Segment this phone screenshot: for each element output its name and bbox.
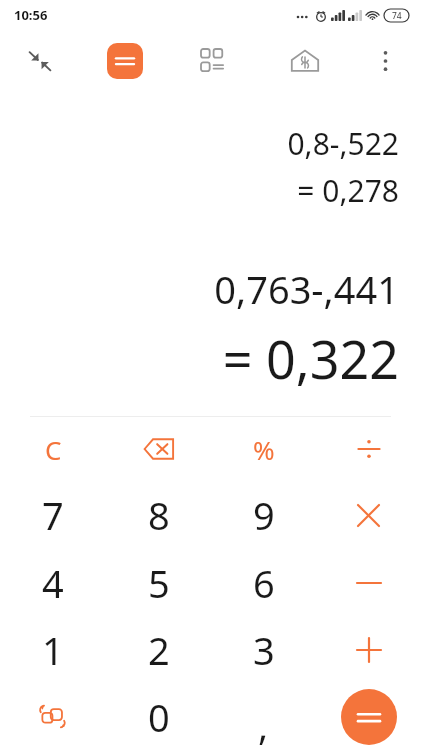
button[interactable]: Collapse bbox=[0, 30, 80, 92]
staticText: 3 bbox=[253, 624, 275, 676]
button[interactable]: 1 bbox=[0, 616, 106, 683]
staticText: 8 bbox=[148, 489, 170, 541]
button[interactable]: More options bbox=[350, 30, 421, 92]
staticText: 74 bbox=[392, 10, 402, 22]
staticText: 6 bbox=[253, 557, 275, 609]
staticText: , bbox=[258, 699, 269, 750]
button[interactable]: Plus bbox=[316, 616, 421, 683]
button[interactable]: Calculator bbox=[80, 30, 170, 92]
button[interactable]: 5 bbox=[106, 549, 211, 616]
button[interactable]: Units bbox=[170, 30, 260, 92]
staticText: 10:56 bbox=[14, 6, 48, 24]
button[interactable]: Equals bbox=[341, 689, 397, 745]
staticText: = 0,278 bbox=[297, 170, 399, 211]
button[interactable]: 6 bbox=[211, 549, 316, 616]
button[interactable]: 4 bbox=[0, 549, 106, 616]
staticText: 7 bbox=[42, 489, 64, 541]
button[interactable]: 0 bbox=[106, 683, 211, 750]
staticText: 2 bbox=[148, 624, 170, 676]
button[interactable]: Clear bbox=[0, 417, 106, 481]
staticText: 4 bbox=[42, 557, 64, 609]
button[interactable]: 9 bbox=[211, 481, 316, 549]
staticText: 5 bbox=[148, 557, 170, 609]
button[interactable]: , bbox=[211, 683, 316, 750]
staticText: C bbox=[45, 432, 62, 467]
button[interactable]: Convert bbox=[0, 683, 106, 750]
button[interactable]: 2 bbox=[106, 616, 211, 683]
staticText: 0,8-,522 bbox=[287, 123, 399, 164]
staticText: 1 bbox=[42, 624, 64, 676]
button[interactable]: 8 bbox=[106, 481, 211, 549]
staticText: % bbox=[253, 432, 275, 467]
button[interactable]: 7 bbox=[0, 481, 106, 549]
button[interactable]: 3 bbox=[211, 616, 316, 683]
staticText: 9 bbox=[253, 489, 275, 541]
staticText: = 0,322 bbox=[222, 323, 399, 394]
staticText: 0,763-,441 bbox=[214, 263, 399, 315]
button[interactable]: Minus bbox=[316, 549, 421, 616]
button[interactable]: Percent bbox=[211, 417, 316, 481]
staticText: 0 bbox=[148, 691, 170, 743]
button[interactable]: Multiply bbox=[316, 481, 421, 549]
button[interactable]: Mortgage bbox=[260, 30, 350, 92]
button[interactable]: Divide bbox=[316, 417, 421, 481]
button[interactable]: Backspace bbox=[106, 417, 211, 481]
